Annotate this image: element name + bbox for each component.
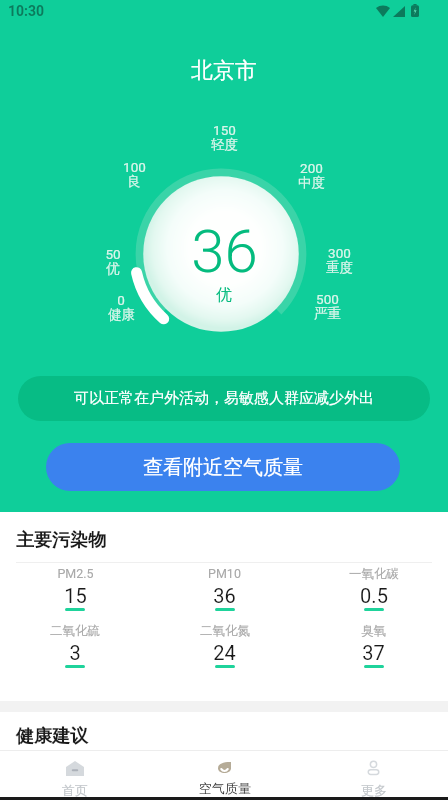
staticText: 0	[117, 292, 125, 308]
button[interactable]: 可以正常在户外活动，易敏感人群应减少外出	[18, 376, 430, 421]
staticText: 10:30	[8, 3, 45, 19]
staticText: 300	[328, 245, 351, 261]
staticText: 一氧化碳	[349, 566, 399, 582]
staticText: 二氧化硫	[50, 623, 100, 639]
other: 首页	[66, 761, 84, 776]
staticText: PM10	[208, 566, 241, 581]
staticText: 空气质量	[199, 780, 251, 796]
staticText: 可以正常在户外活动，易敏感人群应减少外出	[74, 389, 374, 408]
staticText: 臭氧	[361, 623, 386, 639]
staticText: 健康建议	[16, 725, 88, 748]
staticText: 二氧化氮	[200, 623, 250, 639]
staticText: 优	[106, 260, 120, 277]
staticText: 50	[105, 246, 121, 262]
staticText: PM2.5	[57, 566, 94, 581]
staticText: 重度	[326, 259, 353, 276]
staticText: 3	[69, 641, 81, 664]
staticText: 首页	[62, 782, 88, 798]
staticText: 150	[213, 122, 236, 138]
staticText: 健康	[108, 306, 135, 323]
button[interactable]: 首页	[0, 750, 150, 800]
staticText: 24	[213, 641, 236, 664]
staticText: 北京市	[191, 57, 257, 85]
button[interactable]: 空气质量	[150, 750, 299, 800]
staticText: 轻度	[211, 136, 238, 153]
staticText: 15	[64, 584, 87, 607]
staticText: 37	[362, 641, 385, 664]
staticText: 查看附近空气质量	[143, 455, 303, 480]
staticText: 100	[123, 159, 146, 175]
staticText: 200	[300, 160, 323, 176]
button[interactable]: 更多	[299, 750, 448, 800]
staticText: 优	[216, 285, 232, 305]
staticText: 36	[191, 216, 258, 286]
staticText: 更多	[361, 782, 387, 798]
staticText: 严重	[314, 305, 341, 322]
button[interactable]: 查看附近空气质量	[46, 443, 400, 491]
staticText: 主要污染物	[16, 529, 106, 552]
staticText: 36	[213, 584, 236, 607]
other: 更多	[366, 761, 381, 776]
other: 空气质量	[218, 761, 231, 774]
staticText: 0.5	[360, 584, 388, 607]
staticText: 良	[127, 173, 141, 190]
staticText: 500	[316, 291, 339, 307]
staticText: 中度	[298, 174, 325, 191]
